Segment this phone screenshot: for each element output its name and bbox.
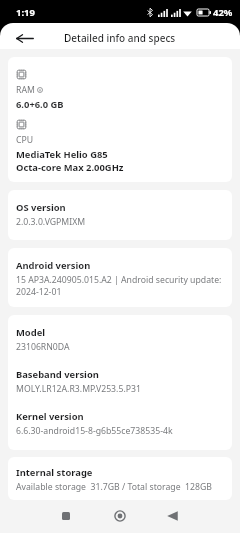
staticText: Baseband version [16, 368, 99, 381]
staticText: OS version [16, 201, 66, 214]
button[interactable]: Home [107, 503, 132, 528]
staticText: 1:19 [16, 6, 35, 19]
button[interactable]: Back [160, 503, 185, 528]
staticText: Detailed info and specs [64, 31, 176, 45]
staticText: Android version [16, 259, 91, 272]
staticText: 42% [213, 6, 233, 19]
staticText: MOLY.LR12A.R3.MP.V253.5.P31 [16, 383, 141, 395]
staticText: 23106RN0DA [16, 341, 70, 353]
button[interactable]: Internal storage [8, 457, 232, 500]
staticText: Model [16, 326, 46, 339]
staticText: Kernel version [16, 410, 84, 423]
button[interactable]: Back [13, 26, 37, 49]
staticText: 6.0+6.0 GB [16, 98, 64, 111]
button[interactable]: Android version [8, 248, 232, 307]
staticText: Octa-core Max 2.00GHz [16, 161, 124, 174]
staticText: 2.0.3.0.VGPMIXM [16, 216, 86, 228]
button[interactable]: RAM [8, 57, 232, 182]
staticText: Available storage 31.7GB / Total storage… [16, 481, 212, 493]
staticText: 6.6.30-android15-8-g6b55ce738535-4k [16, 425, 173, 437]
staticText: 15 AP3A.240905.015.A2 | Android security… [16, 274, 222, 286]
staticText: MediaTek Helio G85 [16, 148, 108, 161]
button[interactable]: OS version [8, 190, 232, 240]
button[interactable]: Model [8, 315, 232, 450]
staticText: Internal storage [16, 466, 93, 479]
staticText: 2024-12-01 [16, 286, 62, 298]
staticText: RAM [16, 84, 35, 96]
button[interactable]: Recent apps [53, 503, 78, 528]
staticText: CPU [16, 134, 34, 146]
